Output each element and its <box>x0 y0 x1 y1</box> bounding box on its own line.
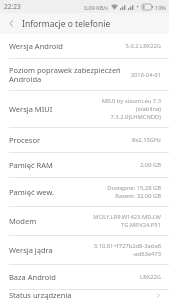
staticText: 10% <box>155 4 166 11</box>
staticText: LRX22G <box>140 273 161 281</box>
button[interactable]: Poziom poprawek zabezpieczeń Androida <box>0 59 169 91</box>
button[interactable]: Wersja jądra <box>0 236 169 265</box>
staticText: Pamięć RAM <box>9 160 136 170</box>
staticText: Pamięć wew. <box>9 187 103 197</box>
staticText: 3.10.61+f727b2d8-3ada6 <box>93 242 161 250</box>
button[interactable]: Status urządzenia <box>0 290 169 300</box>
staticText: Poziom poprawek zabezpieczeń Androida <box>9 65 126 84</box>
staticText: 2,00 GB <box>140 161 161 169</box>
button[interactable]: Baza Android <box>0 265 169 290</box>
button[interactable]: Pamięć RAM <box>0 153 169 178</box>
staticText: Dostępne: 15,28 GB <box>107 184 161 192</box>
button[interactable]: Procesor <box>0 128 169 153</box>
staticText: Razem: 32,00 GB <box>115 192 161 200</box>
staticText: Wersja Android <box>9 41 121 51</box>
staticText: Wersja MIUI <box>9 104 97 114</box>
button[interactable]: Modem <box>0 207 169 236</box>
staticText: 8x2,15GHz <box>131 136 161 144</box>
button[interactable]: Wersja MIUI <box>0 91 169 128</box>
button[interactable]: Pamięć wew. <box>0 178 169 207</box>
staticText: 5.0.2 LRX22G <box>125 42 161 50</box>
staticText: MIUI by xiaomi.eu 7.3 <box>101 97 161 105</box>
staticText: 0,09 KB/s <box>84 4 109 11</box>
button[interactable]: Wstecz <box>0 13 22 34</box>
staticText: (stabilna) <box>136 105 161 113</box>
staticText: Baza Android <box>9 272 136 282</box>
staticText: + <box>136 3 140 11</box>
staticText: Status urządzenia <box>9 290 156 300</box>
staticText: MOLY.LR9.W1423.MD.LW <box>93 213 161 221</box>
button[interactable]: Wersja Android <box>0 34 169 59</box>
staticText: 2016-04-01 <box>130 71 161 79</box>
staticText: Informacje o telefonie <box>22 18 111 30</box>
staticText: Procesor <box>9 135 127 145</box>
staticText: -ad63e473 <box>132 250 161 258</box>
staticText: Wersja jądra <box>9 245 89 255</box>
staticText: Modem <box>9 216 89 226</box>
staticText: 22:23 <box>4 2 21 11</box>
staticText: 7.3.2.0(LHMCNDD) <box>110 113 161 121</box>
staticText: TG.MP.V24.P51 <box>121 221 161 229</box>
